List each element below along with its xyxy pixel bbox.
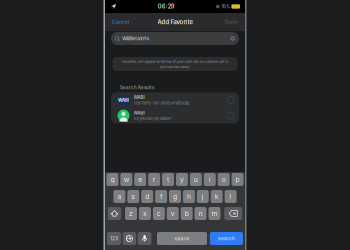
button[interactable]: z bbox=[125, 207, 137, 220]
staticText: q bbox=[110, 175, 114, 184]
staticText: WABetaInfo bbox=[122, 36, 149, 41]
button[interactable]: Done bbox=[223, 16, 240, 28]
staticText: h bbox=[187, 192, 191, 201]
staticText: k bbox=[215, 192, 219, 201]
button[interactable]: Clear text bbox=[226, 32, 239, 45]
button[interactable]: p bbox=[232, 173, 244, 186]
button[interactable]: search bbox=[210, 232, 243, 245]
staticText: 06:29 bbox=[158, 3, 175, 10]
button[interactable]: q bbox=[106, 173, 118, 186]
button[interactable]: m bbox=[208, 207, 220, 220]
button[interactable]: Delete bbox=[224, 207, 242, 220]
staticText: Do you like my status? bbox=[133, 116, 171, 121]
button[interactable]: c bbox=[153, 207, 165, 220]
button[interactable]: Dictate bbox=[138, 232, 151, 245]
staticText: WABI bbox=[133, 110, 144, 116]
staticText: j bbox=[202, 192, 204, 201]
staticText: c bbox=[157, 209, 161, 218]
staticText: l bbox=[230, 192, 232, 201]
button[interactable]: r bbox=[148, 173, 160, 186]
staticText: n bbox=[199, 209, 203, 218]
button[interactable]: t bbox=[162, 173, 174, 186]
button[interactable]: Next keyboard bbox=[123, 232, 136, 245]
staticText: g bbox=[173, 192, 177, 201]
button[interactable]: s bbox=[127, 190, 139, 203]
staticText: WABI bbox=[133, 95, 144, 100]
staticText: i bbox=[209, 175, 211, 184]
staticText: e bbox=[138, 175, 142, 184]
staticText: u bbox=[194, 175, 198, 184]
button[interactable]: w bbox=[120, 173, 132, 186]
button[interactable]: WABI bbox=[111, 108, 239, 123]
button[interactable]: d bbox=[141, 190, 153, 203]
button[interactable]: a bbox=[113, 190, 125, 203]
button[interactable]: Cancel bbox=[110, 16, 131, 28]
staticText: Hey there! I am using WhatsApp. bbox=[133, 101, 189, 105]
staticText: f bbox=[160, 192, 162, 201]
staticText: just one tap away. bbox=[160, 64, 190, 69]
staticText: Search Results bbox=[120, 85, 154, 90]
button[interactable]: h bbox=[183, 190, 195, 203]
button[interactable]: k bbox=[211, 190, 223, 203]
staticText: r bbox=[153, 175, 156, 184]
staticText: p bbox=[236, 175, 240, 184]
button[interactable]: v bbox=[167, 207, 179, 220]
staticText: 76% bbox=[221, 4, 230, 9]
staticText: d bbox=[145, 192, 149, 201]
staticText: w bbox=[124, 175, 129, 184]
staticText: WABI bbox=[118, 97, 129, 103]
button[interactable]: Shift bbox=[108, 207, 121, 220]
button[interactable]: n bbox=[195, 207, 207, 220]
staticText: Done bbox=[225, 19, 238, 25]
staticText: v bbox=[171, 209, 175, 218]
button[interactable]: WABI bbox=[111, 92, 239, 108]
staticText: z bbox=[129, 209, 133, 218]
staticText: Cancel bbox=[112, 19, 129, 25]
button[interactable]: y bbox=[176, 173, 188, 186]
button[interactable]: o bbox=[218, 173, 230, 186]
button[interactable]: u bbox=[190, 173, 202, 186]
staticText: Add Favorite bbox=[157, 18, 192, 26]
staticText: space bbox=[174, 236, 189, 241]
staticText: o bbox=[222, 175, 226, 184]
button[interactable]: f bbox=[155, 190, 167, 203]
staticText: 123 bbox=[110, 236, 118, 241]
staticText: t bbox=[167, 175, 169, 184]
button[interactable]: i bbox=[204, 173, 216, 186]
staticText: search bbox=[218, 236, 235, 241]
button[interactable]: 123 bbox=[107, 232, 121, 245]
staticText: b bbox=[185, 209, 189, 218]
button[interactable]: x bbox=[139, 207, 151, 220]
button[interactable]: space bbox=[157, 232, 207, 245]
staticText: a bbox=[117, 192, 121, 201]
staticText: x bbox=[143, 209, 147, 218]
button[interactable]: g bbox=[169, 190, 181, 203]
button[interactable]: b bbox=[181, 207, 193, 220]
staticText: Favorites will appear at the top of your… bbox=[121, 59, 228, 64]
button[interactable]: e bbox=[134, 173, 146, 186]
button[interactable]: l bbox=[225, 190, 237, 203]
staticText: y bbox=[180, 175, 184, 184]
staticText: s bbox=[131, 192, 135, 201]
button[interactable]: j bbox=[197, 190, 209, 203]
staticText: m bbox=[211, 209, 217, 218]
